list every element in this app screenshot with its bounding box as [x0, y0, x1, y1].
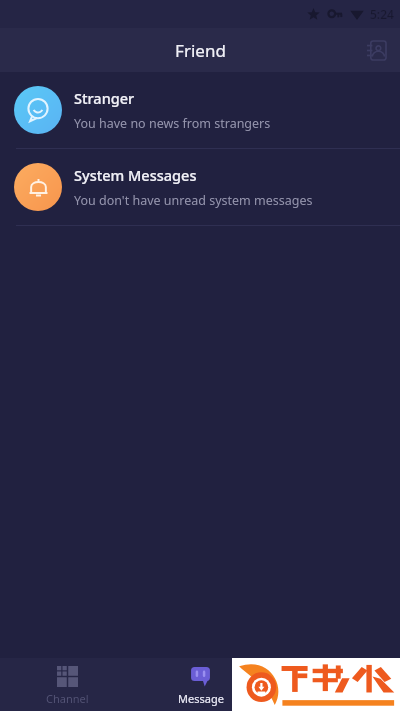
button[interactable]: Channel [0, 658, 134, 711]
button[interactable]: Stranger [0, 72, 400, 148]
button[interactable]: System Messages [0, 149, 400, 225]
button[interactable]: Contacts [359, 33, 393, 67]
staticText: Friend [175, 39, 226, 62]
staticText: System Messages [74, 165, 197, 185]
staticText: You have no news from strangers [74, 115, 271, 132]
staticText: Message [178, 691, 224, 706]
button[interactable]: Message [134, 658, 267, 711]
staticText: Channel [46, 691, 89, 706]
staticText: 5:24 [370, 6, 394, 22]
staticText: You don't have unread system messages [74, 192, 313, 209]
staticText: Stranger [74, 88, 135, 108]
